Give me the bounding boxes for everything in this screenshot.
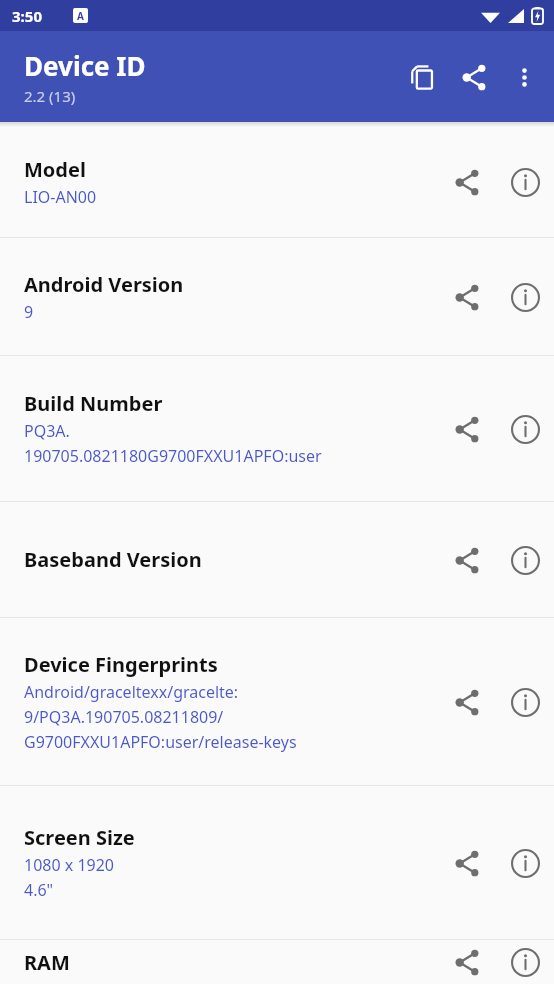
staticText: Device Fingerprints: [24, 651, 218, 678]
staticText: 9: [24, 301, 34, 323]
button[interactable]: RAM: [0, 940, 554, 984]
staticText: PQ3A.: [24, 420, 70, 442]
staticText: A: [77, 9, 84, 23]
button[interactable]: Model: [0, 127, 554, 237]
button[interactable]: Info about Model: [496, 153, 554, 211]
button[interactable]: Info about Build Number: [496, 400, 554, 458]
staticText: Device ID: [24, 48, 146, 83]
button[interactable]: Build Number: [0, 356, 554, 501]
button[interactable]: Share Screen Size: [438, 834, 496, 892]
button[interactable]: More options: [500, 53, 548, 101]
button[interactable]: Share Build Number: [438, 400, 496, 458]
button[interactable]: Android Version: [0, 238, 554, 355]
button[interactable]: Info about Baseband Version: [496, 531, 554, 589]
staticText: G9700FXXU1APFO:user/release-keys: [24, 731, 297, 753]
staticText: 2.2 (13): [24, 86, 76, 106]
staticText: Build Number: [24, 390, 163, 417]
staticText: 190705.0821180G9700FXXU1APFO:user: [24, 445, 322, 467]
staticText: Model: [24, 156, 86, 183]
button[interactable]: Screen Size: [0, 786, 554, 939]
button[interactable]: Share Android Version: [438, 268, 496, 326]
button[interactable]: Copy: [396, 51, 448, 103]
staticText: 4.6": [24, 879, 54, 901]
button[interactable]: Share Device Fingerprints: [438, 673, 496, 731]
staticText: Android/graceltexx/gracelte:: [24, 681, 239, 703]
staticText: Android Version: [24, 271, 184, 298]
staticText: 9/PQ3A.190705.08211809/: [24, 706, 224, 728]
button[interactable]: Info about Screen Size: [496, 834, 554, 892]
staticText: 1080 x 1920: [24, 854, 115, 876]
button[interactable]: Info about Android Version: [496, 268, 554, 326]
button[interactable]: Info about RAM: [496, 940, 554, 984]
button[interactable]: Device Fingerprints: [0, 618, 554, 785]
button[interactable]: Share: [448, 51, 500, 103]
button[interactable]: Info about Device Fingerprints: [496, 673, 554, 731]
staticText: LIO-AN00: [24, 186, 97, 208]
button[interactable]: Baseband Version: [0, 502, 554, 617]
staticText: Screen Size: [24, 824, 135, 851]
staticText: RAM: [24, 949, 70, 976]
staticText: 3:50: [12, 6, 42, 26]
button[interactable]: Share Baseband Version: [438, 531, 496, 589]
staticText: Baseband Version: [24, 546, 202, 573]
button[interactable]: Share RAM: [438, 940, 496, 984]
button[interactable]: Share Model: [438, 153, 496, 211]
